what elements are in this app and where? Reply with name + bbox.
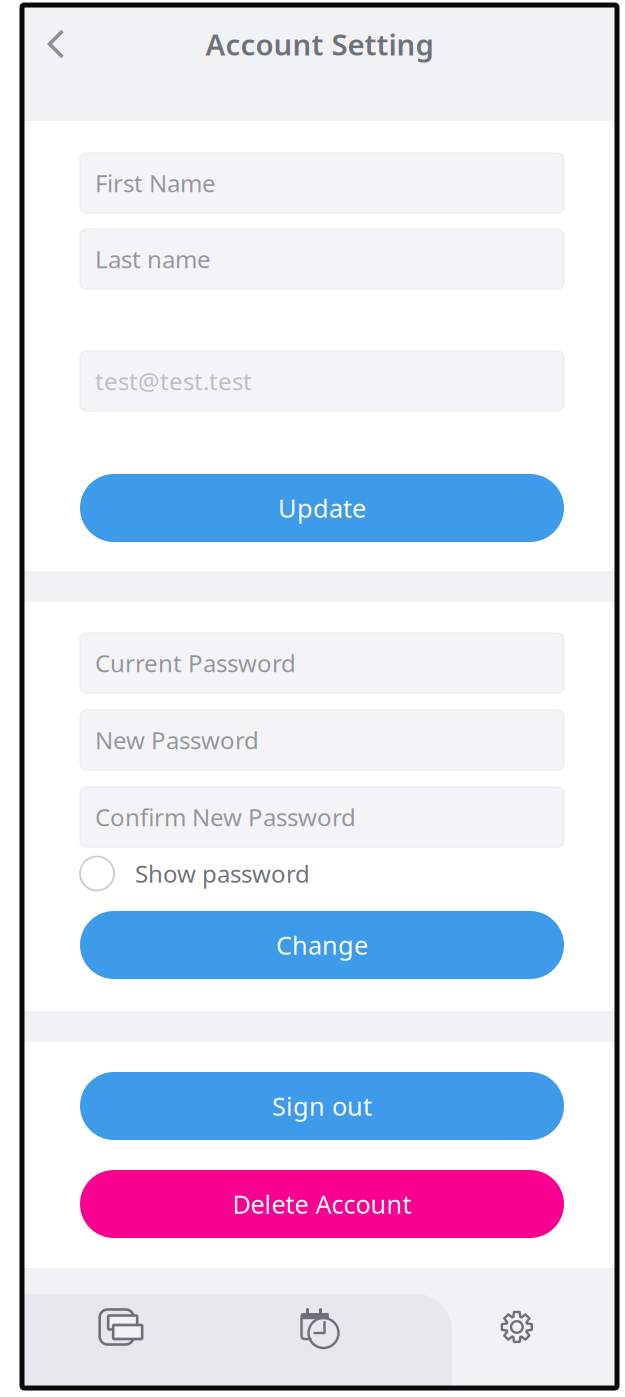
button[interactable]: Sign out xyxy=(80,1072,564,1140)
staticText: Show password xyxy=(135,858,310,889)
button[interactable]: Show password xyxy=(80,849,564,898)
staticText: Change xyxy=(276,928,368,962)
staticText: Update xyxy=(278,491,366,525)
button[interactable]: Change xyxy=(80,911,564,979)
staticText: New Password xyxy=(95,724,259,756)
button[interactable]: Delete Account xyxy=(80,1170,564,1238)
staticText: Sign out xyxy=(272,1089,372,1123)
staticText: test@test.test xyxy=(95,365,252,397)
button[interactable]: Schedule xyxy=(220,1268,419,1388)
button[interactable]: Update xyxy=(80,474,564,542)
staticText: Account Setting xyxy=(205,24,433,63)
staticText: Delete Account xyxy=(232,1187,411,1221)
button[interactable]: Back xyxy=(22,21,90,67)
staticText: First Name xyxy=(95,167,216,199)
button[interactable]: Documents xyxy=(22,1268,220,1388)
staticText: Last name xyxy=(95,243,211,275)
staticText: Confirm New Password xyxy=(95,801,356,833)
staticText: Current Password xyxy=(95,647,296,679)
button[interactable]: Settings xyxy=(419,1268,617,1388)
